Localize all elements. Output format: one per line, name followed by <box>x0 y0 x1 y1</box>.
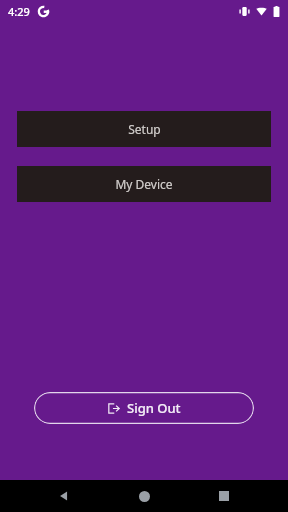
button[interactable]: Home <box>126 480 162 512</box>
staticText: My Device <box>115 176 173 192</box>
button[interactable]: Back <box>46 480 82 512</box>
button[interactable]: Recent apps <box>206 480 242 512</box>
staticText: Setup <box>128 121 161 137</box>
staticText: 4:29 <box>8 4 30 19</box>
staticText: Sign Out <box>127 399 181 417</box>
button[interactable]: Sign Out <box>34 392 254 424</box>
button[interactable]: Setup <box>17 111 271 147</box>
button[interactable]: My Device <box>17 166 271 202</box>
